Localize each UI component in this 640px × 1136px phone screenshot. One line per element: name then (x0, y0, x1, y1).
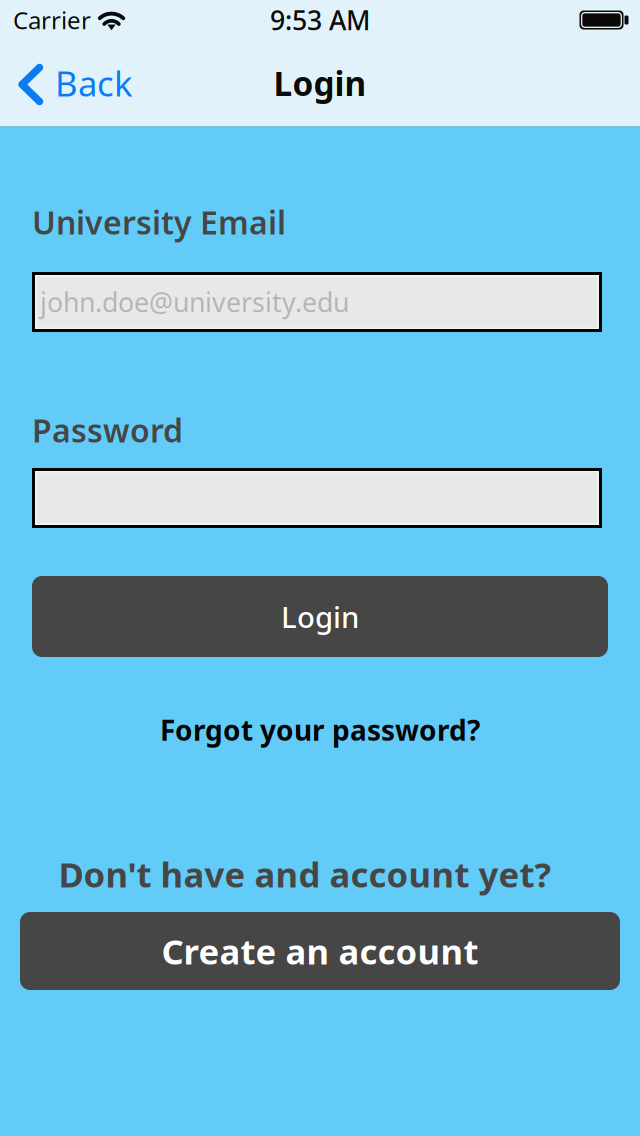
staticText: Back (55, 60, 133, 106)
button[interactable]: Login (32, 576, 608, 657)
staticText: Create an account (161, 928, 478, 974)
staticText: University Email (32, 201, 286, 243)
staticText: Password (32, 409, 183, 451)
button[interactable]: Create an account (20, 912, 620, 990)
staticText: Forgot your password? (160, 711, 480, 749)
button[interactable]: University Email (32, 272, 608, 332)
button[interactable]: Back (0, 50, 147, 116)
staticText: Login (273, 61, 366, 105)
staticText: Don't have and account yet? (58, 851, 551, 897)
staticText: 9:53 AM (270, 2, 370, 38)
staticText: john.doe@university.edu (40, 284, 349, 320)
button[interactable]: Password (32, 468, 608, 528)
staticText: Carrier (13, 4, 91, 36)
button[interactable]: Forgot your password? (32, 712, 608, 748)
staticText: Login (281, 597, 359, 636)
